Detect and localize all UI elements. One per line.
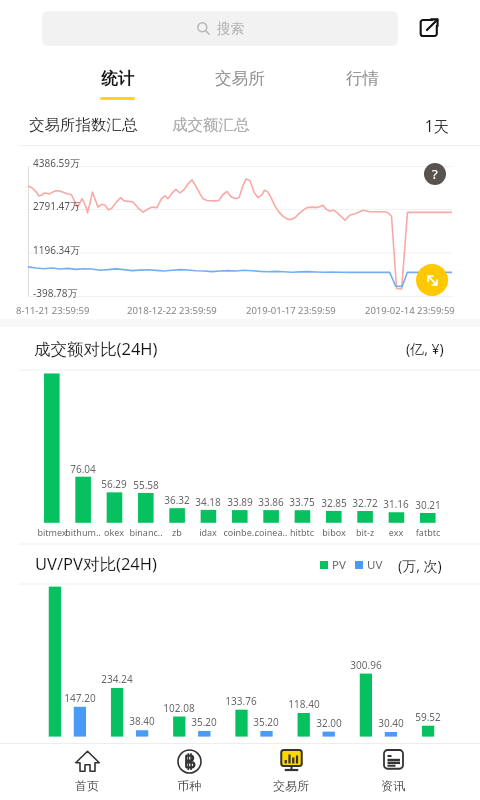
button[interactable]: 搜索 <box>42 11 398 46</box>
button[interactable]: 交易所 <box>180 59 300 105</box>
staticText: UV/PV对比(24H) <box>35 552 157 575</box>
staticText: bibox <box>314 526 354 538</box>
staticText: 31.16 <box>376 497 416 511</box>
staticText: binanc.. <box>126 526 166 538</box>
staticText: 234.24 <box>97 672 137 686</box>
staticText: 33.89 <box>220 495 260 509</box>
button[interactable]: Fullscreen <box>416 264 448 296</box>
staticText: 30.40 <box>371 716 411 730</box>
staticText: 交易所 <box>273 778 309 793</box>
staticText: coinbe.. <box>220 526 260 538</box>
button[interactable]: 行情 <box>302 59 422 105</box>
staticText: 38.40 <box>122 714 162 728</box>
staticText: PV <box>332 557 346 573</box>
staticText: (亿, ¥) <box>406 339 444 358</box>
staticText: 交易所 <box>215 68 265 89</box>
staticText: 33.86 <box>251 495 291 509</box>
staticText: 统计 <box>101 68 134 89</box>
staticText: 1196.34万 <box>33 243 80 257</box>
button[interactable]: Open in new window <box>414 13 444 43</box>
staticText: bit-z <box>345 526 385 538</box>
staticText: okex <box>94 526 134 538</box>
staticText: 搜索 <box>217 20 244 37</box>
staticText: UV <box>367 557 383 573</box>
button[interactable]: 成交额汇总 <box>172 115 250 135</box>
button[interactable]: 交易所 <box>241 744 341 800</box>
staticText: 35.20 <box>246 715 286 729</box>
staticText: zb <box>157 526 197 538</box>
staticText: 资讯 <box>381 778 405 793</box>
staticText: 成交额对比(24H) <box>34 337 158 360</box>
button[interactable]: 资讯 <box>343 744 443 800</box>
staticText: 300.96 <box>346 658 386 672</box>
staticText: ? <box>432 165 438 183</box>
staticText: (万, 次) <box>398 556 442 575</box>
staticText: 4386.59万 <box>33 156 80 170</box>
button[interactable]: Help <box>424 163 446 185</box>
staticText: 34.18 <box>188 495 228 509</box>
button[interactable]: 币种 <box>139 744 239 800</box>
staticText: exx <box>376 526 416 538</box>
staticText: 32.85 <box>314 496 354 510</box>
staticText: 102.08 <box>159 701 199 715</box>
staticText: 行情 <box>346 68 379 89</box>
staticText: bithum.. <box>63 526 103 538</box>
staticText: 2791.47万 <box>33 199 80 213</box>
staticText: 56.29 <box>94 477 134 491</box>
staticText: 32.72 <box>345 496 385 510</box>
staticText: 147.20 <box>60 691 100 705</box>
staticText: 133.76 <box>221 694 261 708</box>
staticText: 55.58 <box>126 478 166 492</box>
button[interactable]: 首页 <box>37 744 137 800</box>
staticText: 76.04 <box>63 462 103 476</box>
staticText: bitmex <box>32 526 72 538</box>
staticText: 35.20 <box>184 715 224 729</box>
staticText: hitbtc <box>282 526 322 538</box>
staticText: 33.75 <box>282 495 322 509</box>
staticText: 2019-01-17 23:59:59 <box>246 304 336 317</box>
staticText: 8-11-21 23:59:59 <box>16 304 90 317</box>
staticText: 首页 <box>75 778 99 793</box>
staticText: 59.52 <box>408 710 448 724</box>
staticText: idax <box>188 526 228 538</box>
staticText: 30.21 <box>408 498 448 512</box>
button[interactable]: 统计 <box>57 59 177 105</box>
button[interactable]: 交易所指数汇总 <box>29 115 138 135</box>
staticText: 2019-02-14 23:59:59 <box>365 304 455 317</box>
staticText: 32.00 <box>309 716 349 730</box>
staticText: 币种 <box>177 778 201 793</box>
staticText: 2018-12-22 23:59:59 <box>127 304 217 317</box>
staticText: fatbtc <box>408 526 448 538</box>
staticText: 36.32 <box>157 493 197 507</box>
staticText: 1天 <box>420 115 449 136</box>
staticText: coinea.. <box>251 526 291 538</box>
button[interactable]: 1天 <box>420 115 449 136</box>
staticText: -398.78万 <box>33 286 78 300</box>
staticText: 118.40 <box>284 697 324 711</box>
